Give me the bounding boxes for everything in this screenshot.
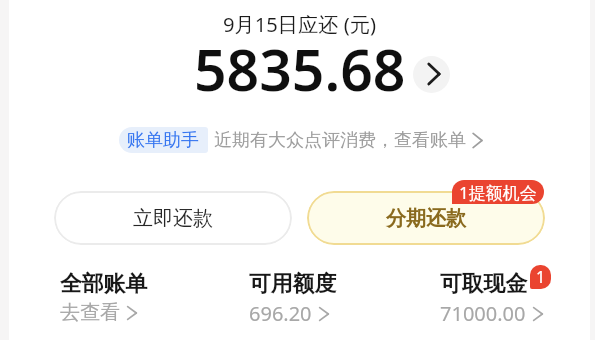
staticText: 可取现金 [440, 270, 528, 297]
button[interactable]: 立即还款 [54, 191, 292, 245]
button[interactable]: 全部账单 [60, 270, 148, 325]
button[interactable]: 查看账单详情 [413, 56, 450, 93]
staticText: 近期有大众点评消费，查看账单 [214, 129, 466, 152]
staticText: 去查看 [60, 300, 120, 325]
button[interactable]: 可取现金 [440, 270, 549, 327]
button[interactable]: 账单助手 [119, 127, 208, 153]
button[interactable]: 可用额度 [249, 270, 337, 327]
button[interactable]: 1提额机会 [452, 180, 544, 204]
staticText: 分期还款 [386, 206, 466, 231]
staticText: 1提额机会 [459, 181, 537, 204]
button[interactable]: 分期还款 [307, 191, 545, 245]
staticText: 1 [536, 266, 546, 288]
button[interactable]: 近期有大众点评消费，查看账单 [214, 129, 481, 152]
staticText: 71000.00 [440, 300, 526, 327]
staticText: 全部账单 [60, 270, 148, 297]
staticText: 立即还款 [133, 206, 213, 231]
staticText: 9月15日应还 (元) [223, 10, 376, 38]
staticText: 5835.68 [194, 30, 406, 108]
staticText: 696.20 [249, 300, 312, 327]
staticText: 账单助手 [127, 129, 199, 152]
staticText: 可用额度 [249, 270, 337, 297]
